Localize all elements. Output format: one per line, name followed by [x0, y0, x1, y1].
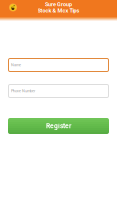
- staticText: Name: [11, 63, 21, 67]
- staticText: Register: [46, 122, 71, 130]
- button[interactable]: Sure Group logo: [0, 3, 22, 13]
- button[interactable]: Name: [8, 58, 109, 72]
- button[interactable]: Phone Number: [8, 84, 109, 98]
- staticText: Stock & Mcx Tips: [37, 7, 79, 14]
- staticText: Phone Number: [11, 89, 35, 93]
- staticText: Sure Group: [45, 1, 72, 7]
- button[interactable]: Register: [8, 118, 109, 134]
